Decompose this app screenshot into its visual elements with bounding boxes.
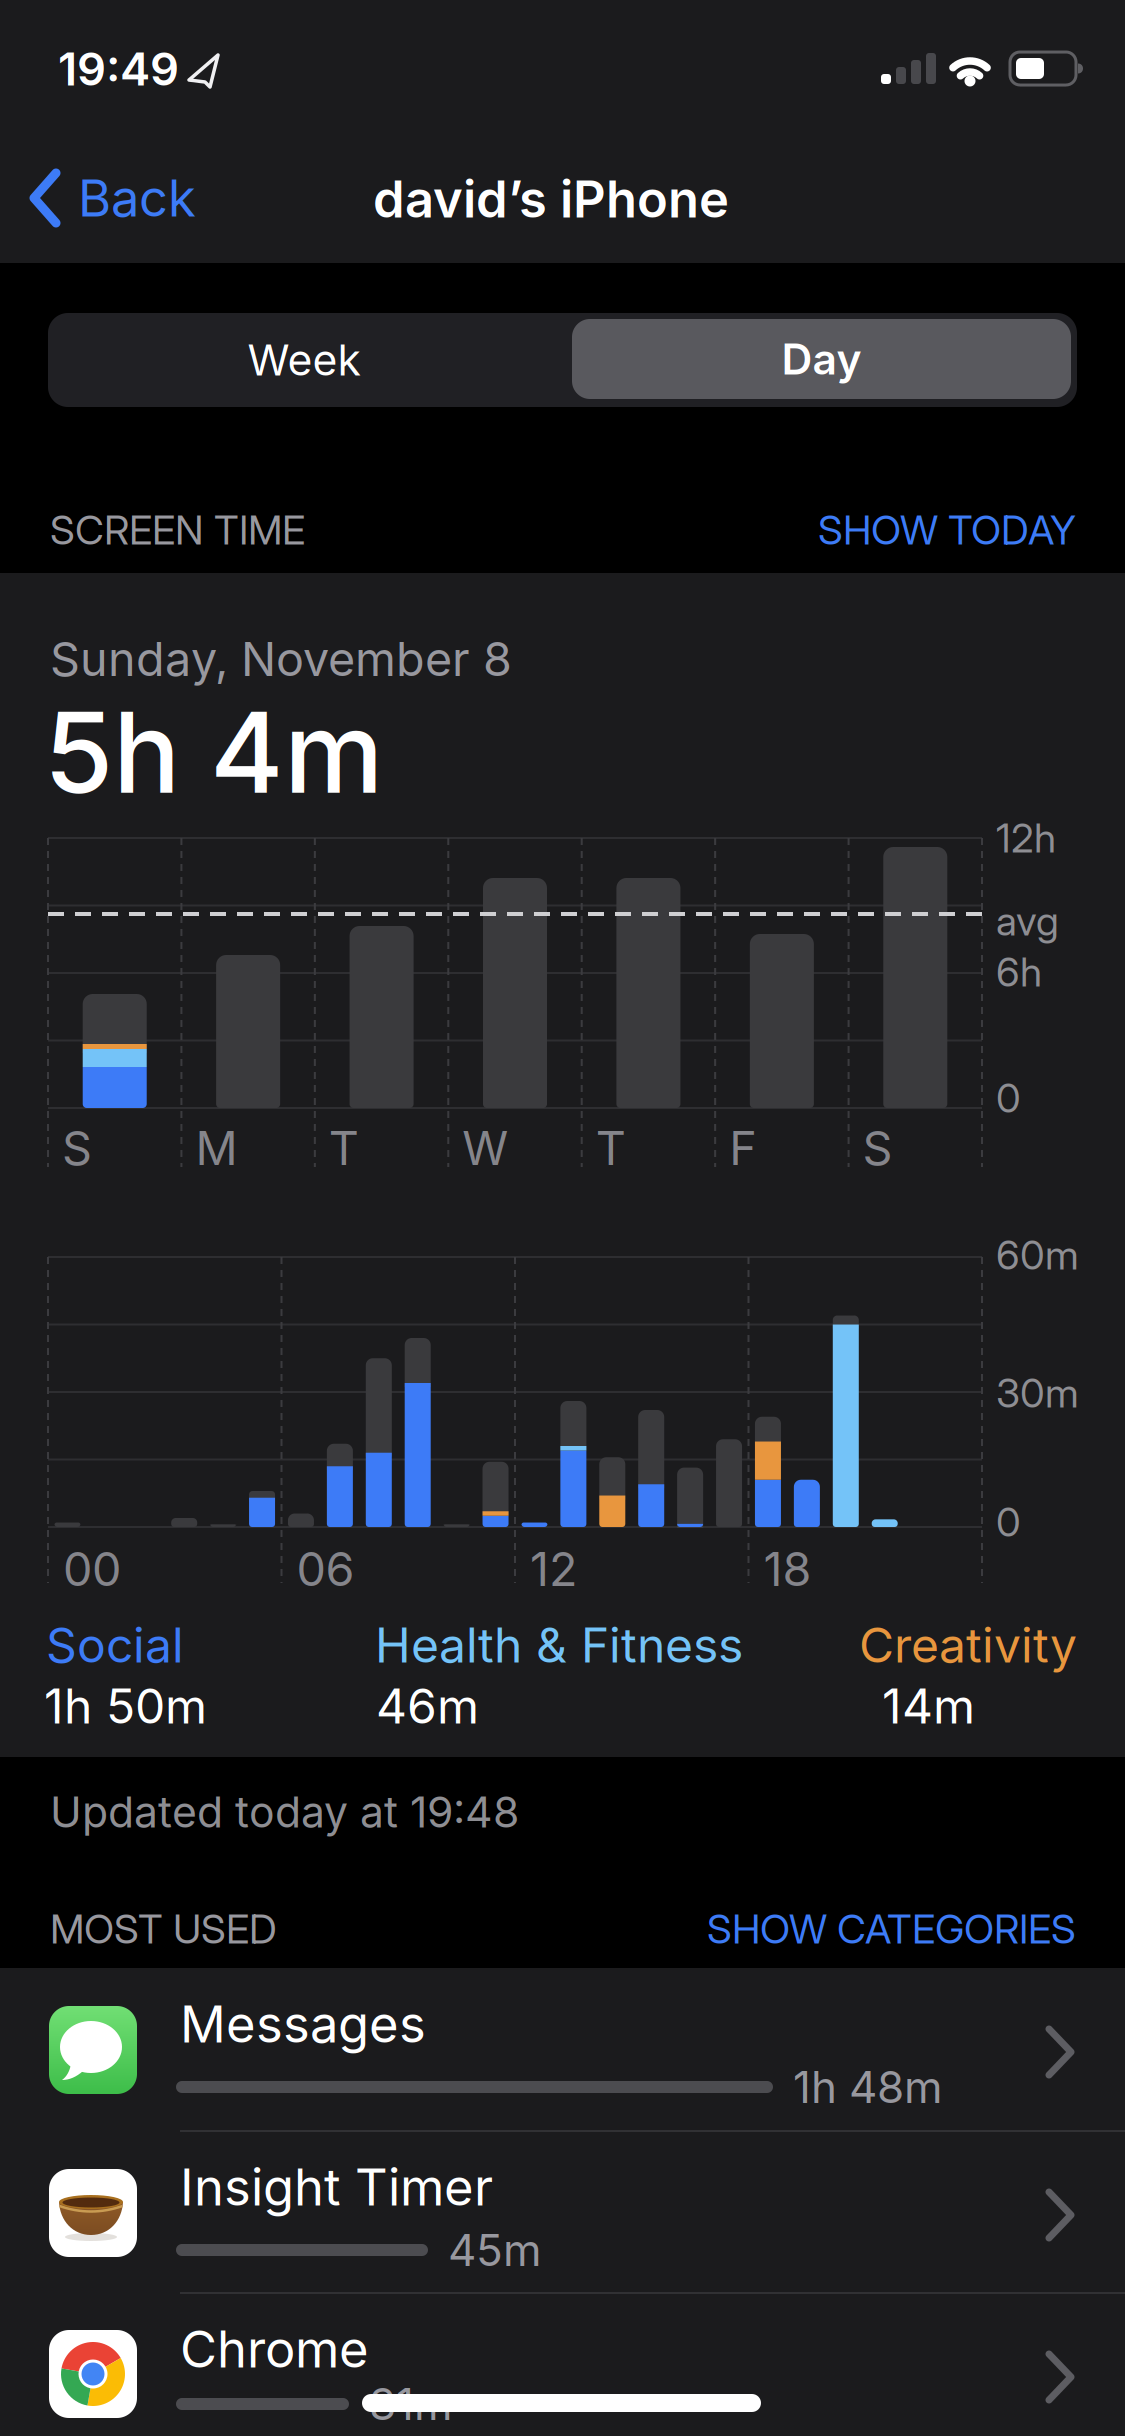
staticText: 5h 4m	[44, 686, 383, 818]
staticText: 18	[763, 1541, 811, 1597]
button[interactable]: Week	[48, 313, 559, 407]
button[interactable]: Messages	[0, 1968, 1125, 2131]
staticText: T	[329, 1120, 359, 1176]
staticText: SHOW CATEGORIES	[707, 1905, 1076, 1953]
button[interactable]: SHOW TODAY	[376, 506, 1076, 554]
staticText: S	[863, 1120, 893, 1176]
staticText: M	[195, 1120, 237, 1176]
staticText: S	[62, 1120, 92, 1176]
staticText: 46m	[376, 1678, 479, 1734]
staticText: SCREEN TIME	[50, 506, 305, 554]
staticText: Sunday, November 8	[50, 631, 512, 687]
staticText: 06	[296, 1541, 354, 1597]
button[interactable]: SHOW CATEGORIES	[376, 1905, 1076, 1953]
staticText: 60m	[996, 1231, 1079, 1279]
staticText: MOST USED	[50, 1905, 277, 1953]
staticText: 0	[996, 1498, 1021, 1546]
staticText: T	[596, 1120, 626, 1176]
staticText: 45m	[448, 2224, 542, 2276]
staticText: Back	[78, 168, 196, 228]
button[interactable]: Insight Timer	[0, 2131, 1125, 2293]
staticText: Week	[247, 335, 360, 385]
staticText: 19:49	[58, 42, 179, 96]
staticText: 30m	[996, 1369, 1079, 1417]
staticText: Social	[46, 1617, 184, 1673]
staticText: SHOW TODAY	[818, 506, 1076, 554]
staticText: avg	[996, 897, 1059, 945]
staticText: Chrome	[180, 2319, 369, 2379]
button[interactable]: Back	[28, 158, 308, 238]
staticText: 00	[63, 1541, 121, 1597]
staticText: 1h 50m	[44, 1678, 207, 1734]
staticText: Insight Timer	[180, 2157, 493, 2217]
staticText: 12	[530, 1541, 577, 1597]
staticText: 31m	[369, 2378, 453, 2430]
button[interactable]: Chrome	[0, 2293, 1125, 2436]
staticText: F	[729, 1120, 757, 1176]
button[interactable]: Day	[572, 319, 1071, 399]
staticText: W	[462, 1120, 508, 1176]
staticText: Updated today at 19:48	[50, 1787, 519, 1837]
staticText: 14m	[882, 1678, 975, 1734]
staticText: 6h	[996, 948, 1042, 996]
staticText: david’s iPhone	[373, 169, 729, 229]
staticText: Health & Fitness	[375, 1617, 743, 1673]
staticText: Creativity	[859, 1617, 1077, 1673]
staticText: Messages	[180, 1994, 426, 2054]
staticText: 0	[996, 1074, 1021, 1122]
staticText: Day	[781, 334, 861, 384]
staticText: 12h	[996, 814, 1056, 862]
staticText: 1h 48m	[793, 2061, 943, 2113]
